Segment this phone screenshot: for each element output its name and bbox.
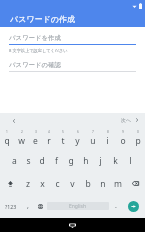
staticText: 9 — [122, 130, 124, 134]
button[interactable]: . — [109, 195, 122, 217]
button[interactable]: 1 — [0, 127, 14, 149]
button[interactable]: 0 — [130, 127, 145, 149]
button[interactable]: x — [35, 172, 50, 195]
button[interactable]: n — [95, 172, 110, 195]
button[interactable]: a — [7, 149, 21, 172]
staticText: ?123 — [5, 203, 17, 210]
staticText: e — [33, 135, 38, 147]
button[interactable]: z — [20, 172, 35, 195]
staticText: . — [115, 201, 117, 211]
staticText: n — [100, 178, 106, 190]
staticText: 0 — [137, 130, 139, 134]
staticText: l — [129, 155, 132, 167]
staticText: 次へ — [121, 117, 132, 123]
staticText: j — [99, 155, 102, 167]
staticText: c — [55, 178, 60, 190]
staticText: パスワードの確認 — [9, 61, 61, 69]
button[interactable]: b — [80, 172, 95, 195]
button[interactable]: Shift — [0, 172, 20, 195]
staticText: i — [106, 135, 109, 147]
button[interactable]: 2 — [14, 127, 28, 149]
button[interactable]: 9 — [115, 127, 130, 149]
staticText: k — [113, 155, 118, 167]
button[interactable]: f — [49, 149, 63, 172]
button[interactable]: Hide keyboard — [69, 223, 76, 228]
staticText: パスワードの作成 — [10, 14, 75, 24]
staticText: t — [61, 135, 65, 147]
button[interactable]: 7 — [85, 127, 100, 149]
staticText: w — [18, 135, 25, 147]
button[interactable]: g — [63, 149, 78, 172]
button[interactable]: , — [21, 195, 34, 217]
staticText: 5 — [62, 130, 64, 134]
staticText: b — [85, 178, 91, 190]
button[interactable]: 3 — [28, 127, 42, 149]
staticText: 4 — [48, 130, 50, 134]
staticText: p — [135, 135, 141, 147]
staticText: v — [70, 178, 75, 190]
button[interactable]: l — [123, 149, 138, 172]
button[interactable]: Previous — [9, 116, 18, 125]
staticText: u — [90, 135, 96, 147]
staticText: m — [114, 178, 122, 190]
button[interactable]: パスワードの確認 — [9, 61, 136, 72]
staticText: g — [68, 155, 74, 167]
staticText: y — [75, 135, 80, 147]
staticText: パスワードを作成 — [9, 34, 61, 42]
button[interactable]: 8 — [100, 127, 115, 149]
button[interactable]: Change language — [34, 195, 47, 217]
staticText: , — [27, 201, 29, 211]
button[interactable]: 4 — [42, 127, 56, 149]
button[interactable]: m — [110, 172, 125, 195]
staticText: 3 — [35, 130, 37, 134]
staticText: a — [12, 155, 17, 167]
button[interactable]: English — [47, 202, 109, 210]
button[interactable]: j — [93, 149, 108, 172]
button[interactable]: d — [35, 149, 49, 172]
button[interactable]: Enter — [122, 195, 145, 217]
staticText: h — [83, 155, 89, 167]
staticText: 7 — [92, 130, 94, 134]
staticText: x — [40, 178, 45, 190]
button[interactable]: h — [78, 149, 93, 172]
button[interactable]: 6 — [70, 127, 85, 149]
staticText: 1 — [6, 130, 8, 134]
button[interactable]: ?123 — [0, 195, 21, 217]
button[interactable]: v — [65, 172, 80, 195]
button[interactable]: s — [21, 149, 35, 172]
staticText: o — [120, 135, 126, 147]
staticText: r — [47, 135, 51, 147]
button[interactable]: 5 — [56, 127, 70, 149]
button[interactable]: c — [50, 172, 65, 195]
button[interactable]: k — [108, 149, 123, 172]
staticText: d — [39, 155, 45, 167]
staticText: 2 — [21, 130, 23, 134]
staticText: 8 — [107, 130, 109, 134]
staticText: q — [4, 135, 10, 147]
button[interactable]: パスワードを作成 — [9, 34, 136, 45]
staticText: z — [26, 178, 30, 190]
button[interactable]: 次へ — [121, 117, 139, 123]
staticText: s — [26, 155, 31, 167]
staticText: English — [69, 203, 87, 210]
staticText: f — [55, 155, 58, 167]
staticText: 6 — [77, 130, 79, 134]
staticText: 8 文字以上で設定してください — [9, 48, 68, 54]
button[interactable]: Backspace — [125, 172, 145, 195]
